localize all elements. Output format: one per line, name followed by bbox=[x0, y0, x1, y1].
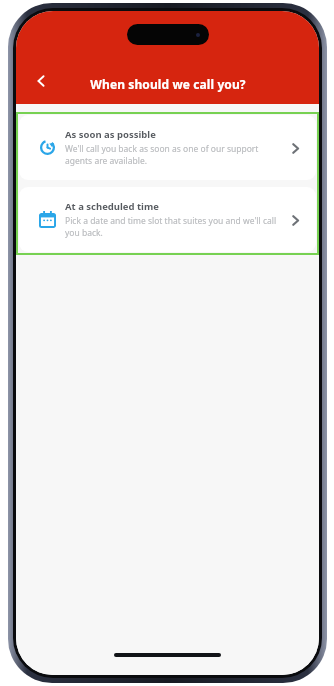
button[interactable]: Back bbox=[26, 66, 56, 96]
staticText: As soon as possible bbox=[65, 128, 156, 141]
button[interactable]: As soon as possible bbox=[19, 115, 316, 180]
staticText: At a scheduled time bbox=[65, 200, 159, 213]
staticText: We'll call you back as soon as one of ou… bbox=[65, 143, 278, 167]
staticText: Pick a date and time slot that suites yo… bbox=[65, 215, 278, 239]
button[interactable]: At a scheduled time bbox=[19, 187, 316, 252]
staticText: When should we call you? bbox=[90, 76, 246, 92]
